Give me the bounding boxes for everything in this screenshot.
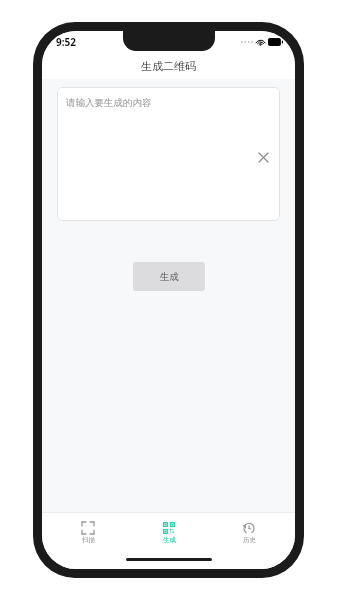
staticText: 请输入要生成的内容 — [66, 97, 152, 109]
button[interactable]: 生成 — [133, 262, 205, 291]
button[interactable]: 历史 — [214, 520, 284, 546]
button[interactable]: Clear — [255, 149, 271, 165]
staticText: 生成二维码 — [141, 59, 196, 73]
staticText: 生成 — [163, 536, 176, 544]
button[interactable]: 请输入要生成的内容 — [57, 87, 280, 221]
staticText: 9:52 — [56, 35, 76, 49]
button[interactable]: 生成 — [134, 520, 204, 546]
staticText: 生成 — [160, 271, 179, 283]
staticText: 历史 — [243, 536, 256, 544]
button[interactable]: 扫描 — [53, 520, 123, 546]
staticText: 扫描 — [82, 536, 95, 544]
